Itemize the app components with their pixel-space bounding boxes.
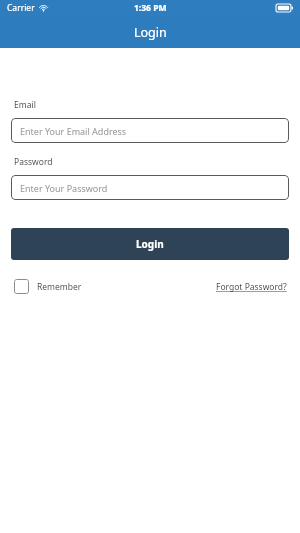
staticText: Email xyxy=(14,99,36,111)
button[interactable]: Login xyxy=(11,228,289,260)
staticText: 1:36 PM xyxy=(134,2,167,14)
staticText: Enter Your Password xyxy=(20,182,108,194)
button[interactable]: Forgot Password? xyxy=(216,281,287,293)
staticText: Forgot Password? xyxy=(216,281,287,293)
staticText: Remember xyxy=(37,281,82,293)
staticText: Login xyxy=(136,237,164,251)
staticText: Password xyxy=(14,156,53,168)
button[interactable]: Enter Your Email Address xyxy=(11,118,289,143)
staticText: Enter Your Email Address xyxy=(20,125,127,137)
staticText: Carrier xyxy=(7,2,35,14)
button[interactable]: Remember xyxy=(14,279,82,294)
button[interactable]: Enter Your Password xyxy=(11,175,289,200)
staticText: Login xyxy=(134,24,167,41)
